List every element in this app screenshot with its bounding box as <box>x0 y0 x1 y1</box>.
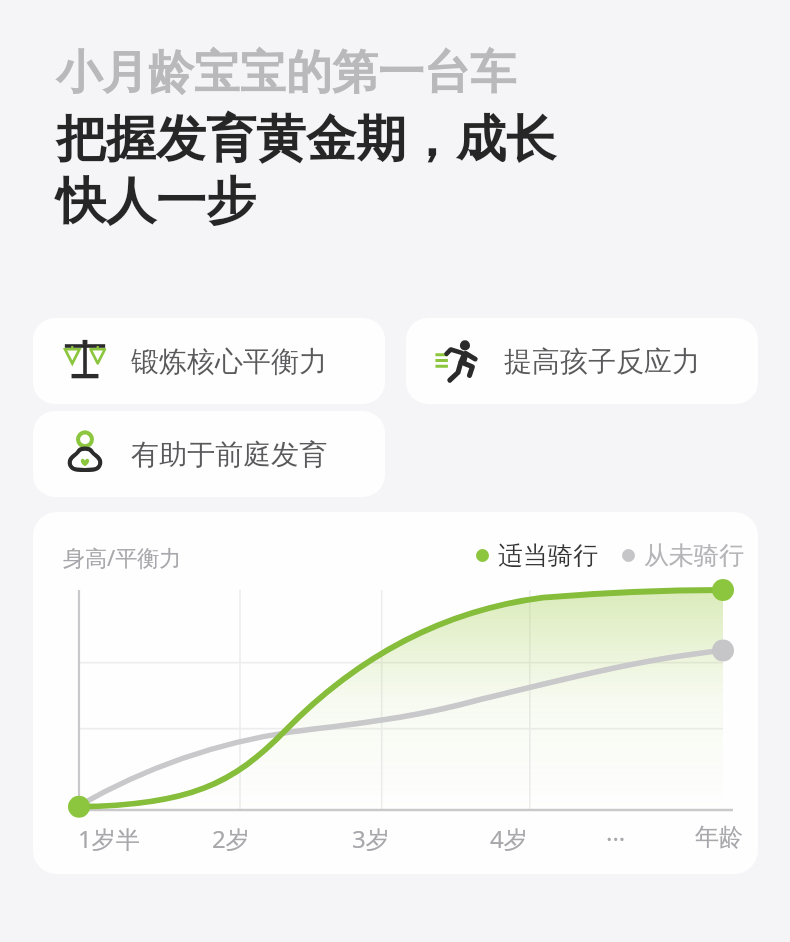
staticText: 2岁 <box>212 822 250 855</box>
button[interactable]: 锻炼核心平衡力 <box>33 318 385 404</box>
staticText: 适当骑行 <box>498 540 598 571</box>
staticText: 把握发育黄金期，成长 快人一步 <box>56 108 556 233</box>
button[interactable]: 身高/平衡力 <box>33 512 758 874</box>
staticText: 4岁 <box>490 822 528 855</box>
staticText: 有助于前庭发育 <box>131 437 327 472</box>
other: 有助于前庭发育 <box>61 430 109 478</box>
staticText: 提高孩子反应力 <box>504 344 700 379</box>
staticText: 身高/平衡力 <box>63 542 182 572</box>
button[interactable]: 有助于前庭发育 <box>33 411 385 497</box>
staticText: 3岁 <box>352 822 390 855</box>
staticText: 从未骑行 <box>644 540 744 571</box>
staticText: 锻炼核心平衡力 <box>131 344 327 379</box>
staticText: 年龄 <box>695 822 743 852</box>
other: 锻炼核心平衡力 <box>61 337 109 385</box>
staticText: 小月龄宝宝的第一台车 <box>56 44 516 102</box>
button[interactable]: 提高孩子反应力 <box>406 318 758 404</box>
other: 提高孩子反应力 <box>434 337 482 385</box>
staticText: 1岁半 <box>78 822 140 855</box>
staticText: ··· <box>606 822 626 855</box>
